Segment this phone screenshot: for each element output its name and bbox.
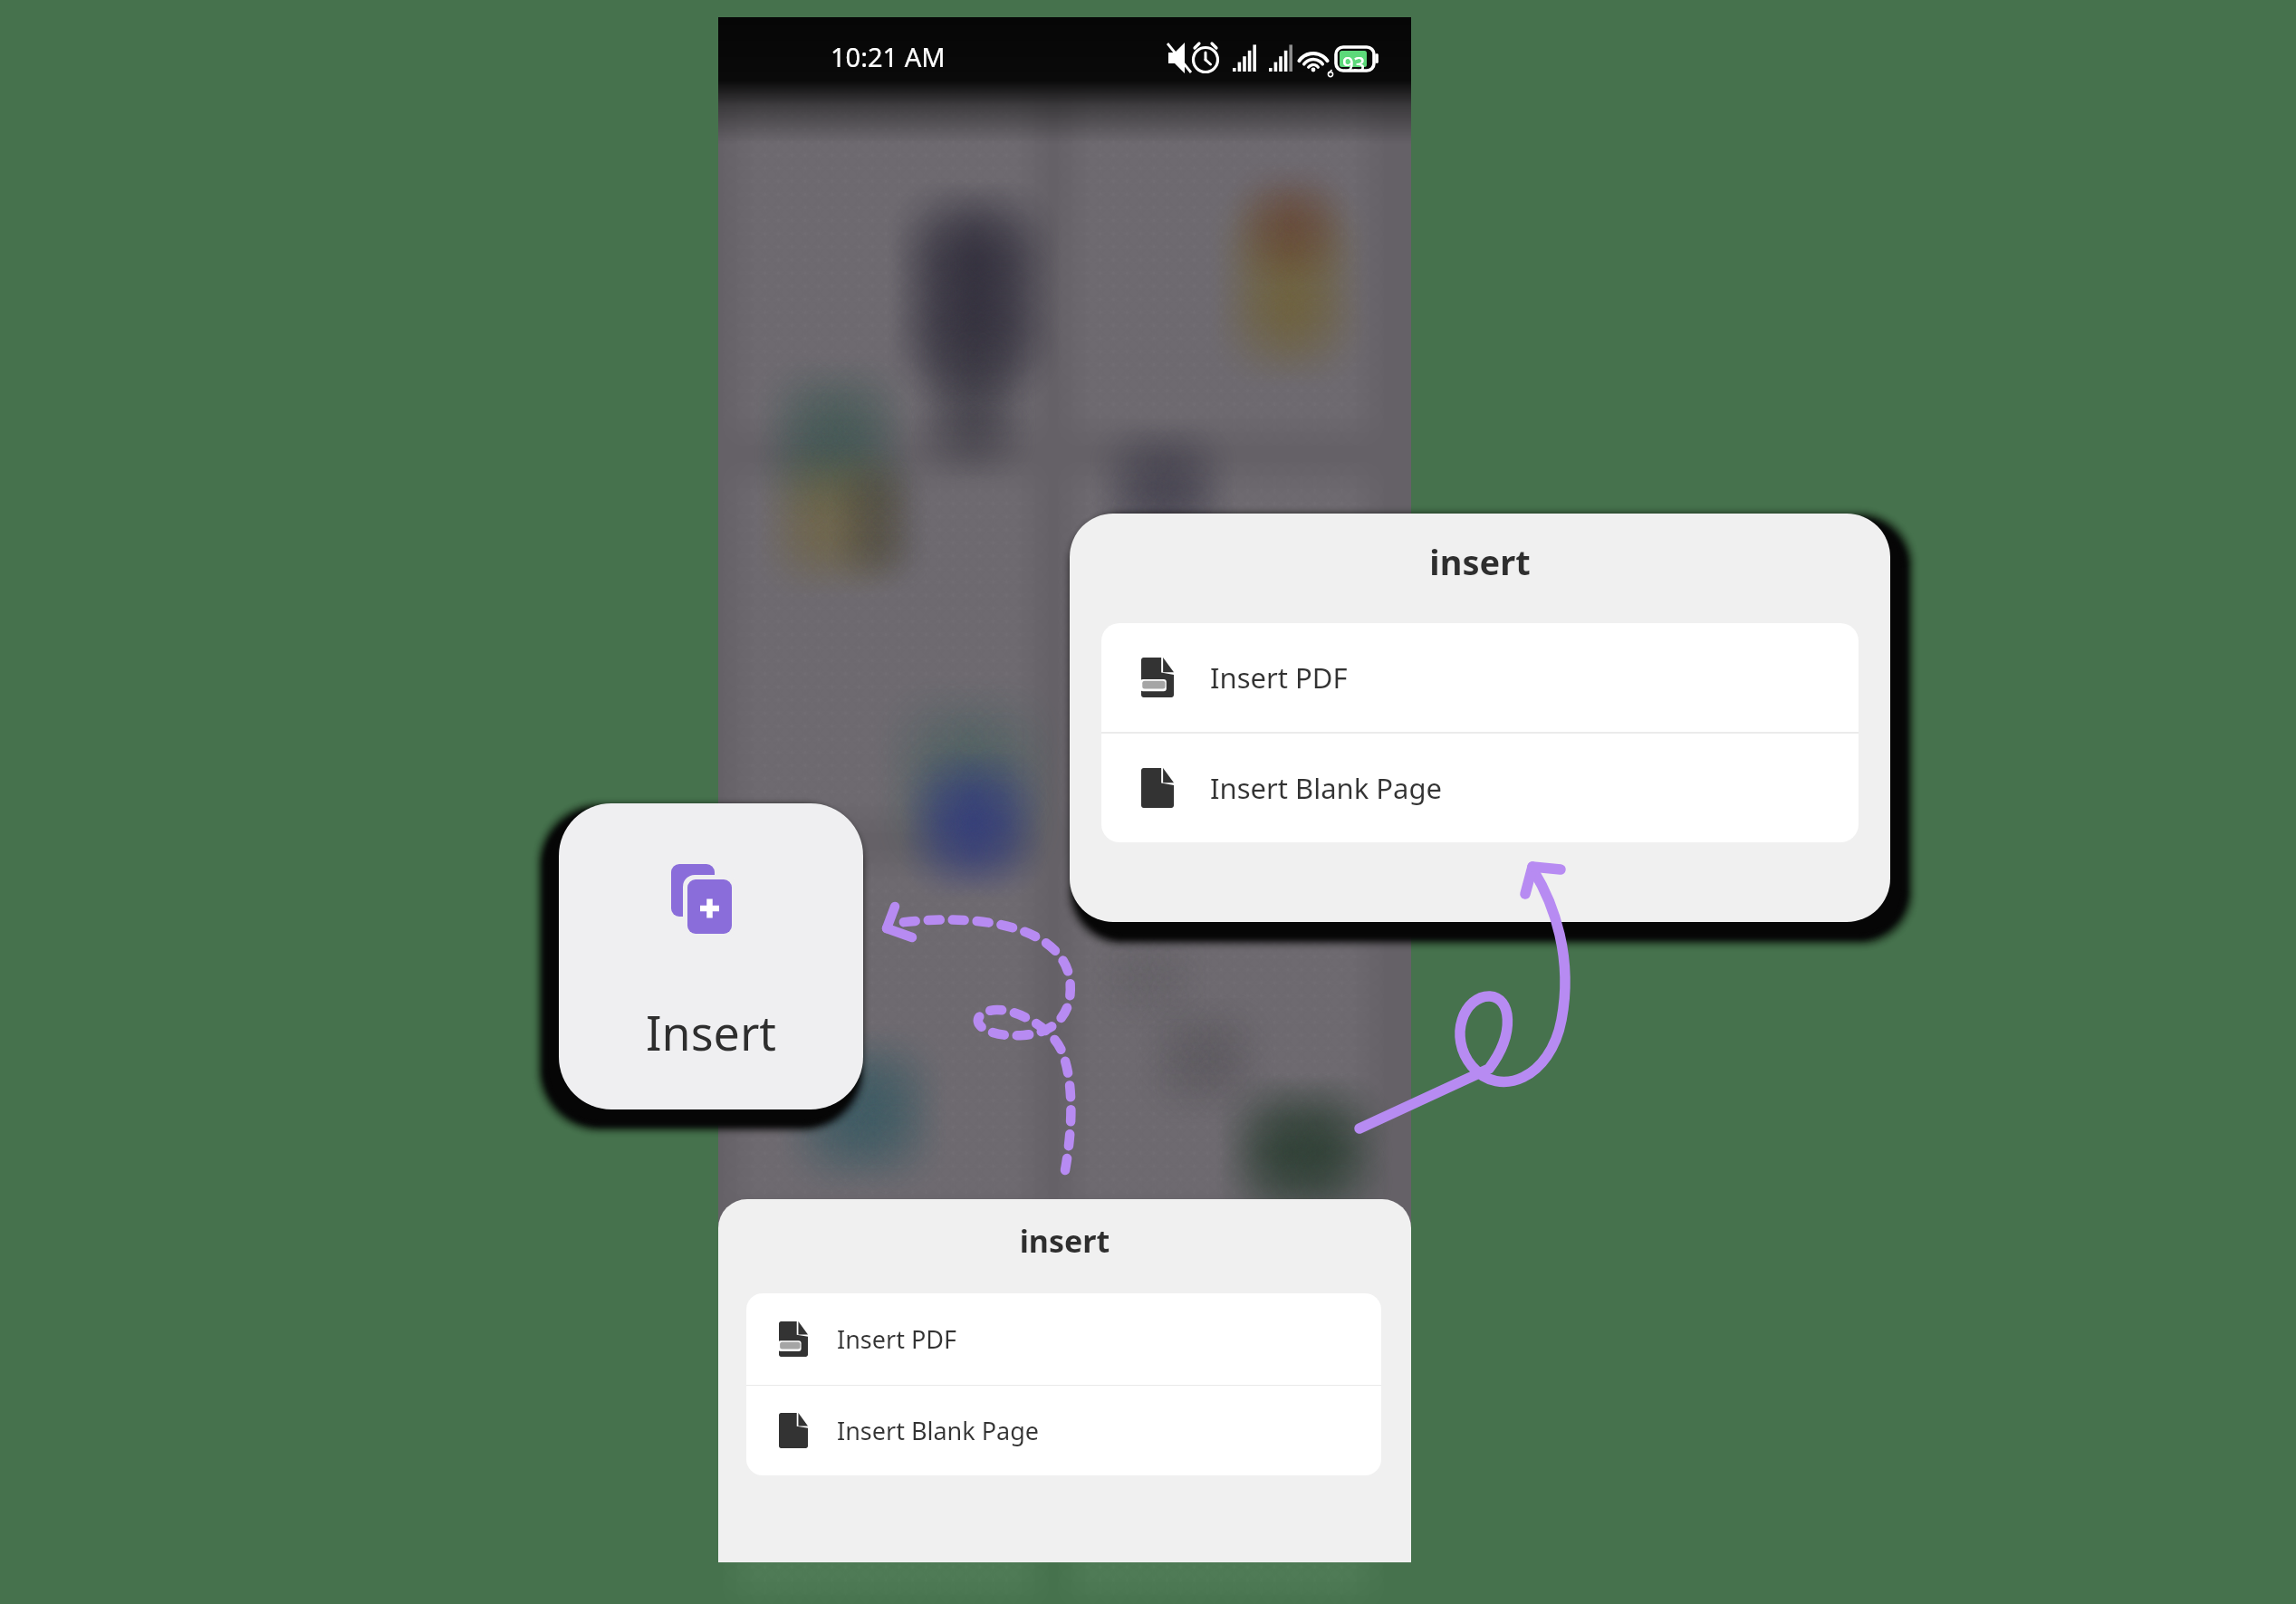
button[interactable]: Insert Blank Page [1101, 734, 1859, 842]
staticText: Insert PDF [837, 1322, 956, 1356]
staticText: 10:21 AM [831, 39, 946, 74]
button[interactable]: Insert Blank Page [746, 1386, 1381, 1475]
other: Mute, alarm, signal, wifi and battery st… [1167, 42, 1385, 82]
staticText: Insert PDF [1210, 658, 1348, 696]
other: Annotation arrows [0, 0, 2296, 1604]
staticText: Insert Blank Page [1210, 769, 1443, 807]
button[interactable]: Insert [559, 803, 863, 1109]
staticText: insert [1070, 538, 1890, 585]
button[interactable]: Insert PDF [746, 1293, 1381, 1385]
button[interactable]: Insert PDF [1101, 623, 1859, 732]
staticText: Insert Blank Page [837, 1414, 1040, 1447]
staticText: insert [718, 1220, 1411, 1262]
staticText: Insert [559, 1000, 863, 1064]
staticText: 93 [1342, 50, 1366, 77]
